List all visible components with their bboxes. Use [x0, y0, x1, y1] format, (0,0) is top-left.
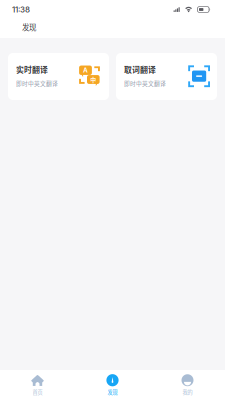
button[interactable]: 实时翻译 — [8, 53, 109, 100]
button[interactable]: 我的 — [150, 370, 225, 399]
staticText: 中 — [90, 75, 96, 84]
staticText: 发现 — [107, 388, 117, 396]
staticText: 实时翻译 — [16, 64, 48, 75]
staticText: 首页 — [32, 388, 42, 396]
staticText: 即时中英文翻译 — [124, 79, 166, 87]
button[interactable]: 发现 — [75, 370, 150, 399]
staticText: 取词翻译 — [124, 64, 156, 75]
staticText: 我的 — [182, 388, 192, 396]
button[interactable]: 首页 — [0, 370, 75, 399]
staticText: A — [83, 66, 88, 74]
staticText: 发现 — [22, 22, 36, 32]
button[interactable]: 取词翻译 — [116, 53, 217, 100]
staticText: 11:38 — [12, 5, 30, 14]
staticText: 即时中英文翻译 — [16, 79, 58, 87]
